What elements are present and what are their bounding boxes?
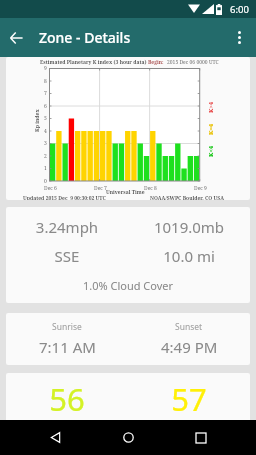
staticText: Sunrise [52,321,82,333]
staticText: 2 [44,153,47,160]
staticText: Estimated Planetary K index (3 hour data… [40,59,147,66]
button[interactable]: Recents [183,420,218,455]
staticText: 0 [44,178,47,185]
staticText: 1019.0mb [128,217,250,237]
staticText: 9 [44,65,47,72]
button[interactable]: Back [38,420,73,455]
staticText: NOAA/SWPC Boulder, CO USA [150,195,224,200]
staticText: 6 [44,103,47,110]
staticText: K>4 [207,101,215,113]
button[interactable]: Sunrise [6,313,250,365]
button[interactable]: Estimated Planetary K index (3 hour data… [6,57,250,200]
staticText: Dec 9 [194,185,207,192]
staticText: 6:00 [230,3,249,16]
staticText: 1.0% Cloud Cover [6,278,250,293]
staticText: Kp index [34,109,41,132]
staticText: Dec 7 [94,185,107,192]
staticText: SSE [6,246,128,266]
staticText: K=4 [207,123,215,135]
staticText: 8 [44,78,47,85]
staticText: Begin: [148,59,164,66]
staticText: 4:49 PM [161,337,218,357]
staticText: Sunset [175,321,203,333]
button[interactable]: 56 [6,373,250,434]
staticText: Updated 2015 Dec 9 00:30:02 UTC [23,195,106,200]
staticText: 1 [44,165,47,172]
button[interactable]: More options [223,18,255,57]
staticText: 56 [6,378,128,420]
staticText: 3.24mph [6,217,128,237]
button[interactable]: Home [111,420,146,455]
staticText: 10.0 mi [128,246,250,266]
staticText: 2015 Dec 06 0000 UTC [167,59,219,66]
staticText: Universal Time [106,189,145,196]
button[interactable]: Back [0,18,33,57]
staticText: 5 [44,115,47,122]
staticText: Zone - Details [39,28,131,47]
staticText: K<4 [207,145,215,157]
staticText: 4 [44,128,47,135]
staticText: 3 [44,140,47,147]
staticText: 7:11 AM [39,337,96,357]
staticText: 7 [44,90,47,97]
staticText: Dec 8 [144,185,157,192]
button[interactable]: 3.24mph [6,207,250,303]
staticText: Dec 6 [44,185,57,192]
staticText: 57 [128,378,250,420]
